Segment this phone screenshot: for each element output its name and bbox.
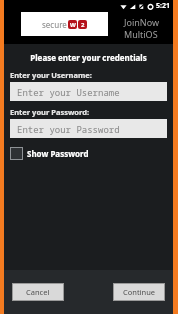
staticText: 5:21 [156, 1, 170, 11]
staticText: Cancel [26, 287, 50, 297]
staticText: Enter your Username [17, 86, 120, 98]
button[interactable]: Cancel [12, 283, 64, 301]
staticText: secure [42, 19, 67, 30]
button[interactable]: Continue [113, 283, 165, 301]
staticText: Enter your Password [17, 123, 120, 135]
staticText: Please enter your credentials [10, 52, 167, 63]
staticText: Continue [123, 287, 156, 297]
staticText: 2 [81, 21, 85, 29]
button[interactable]: Enter your Username [10, 82, 167, 101]
staticText: W [70, 21, 76, 29]
staticText: Enter your Password: [10, 107, 90, 117]
button[interactable]: Show Password [10, 146, 89, 161]
button[interactable]: Enter your Password [10, 119, 167, 138]
staticText: MultiOS [124, 28, 158, 40]
staticText: JoinNow [124, 16, 159, 28]
staticText: Enter your Username: [10, 70, 92, 80]
staticText: Show Password [27, 148, 89, 159]
